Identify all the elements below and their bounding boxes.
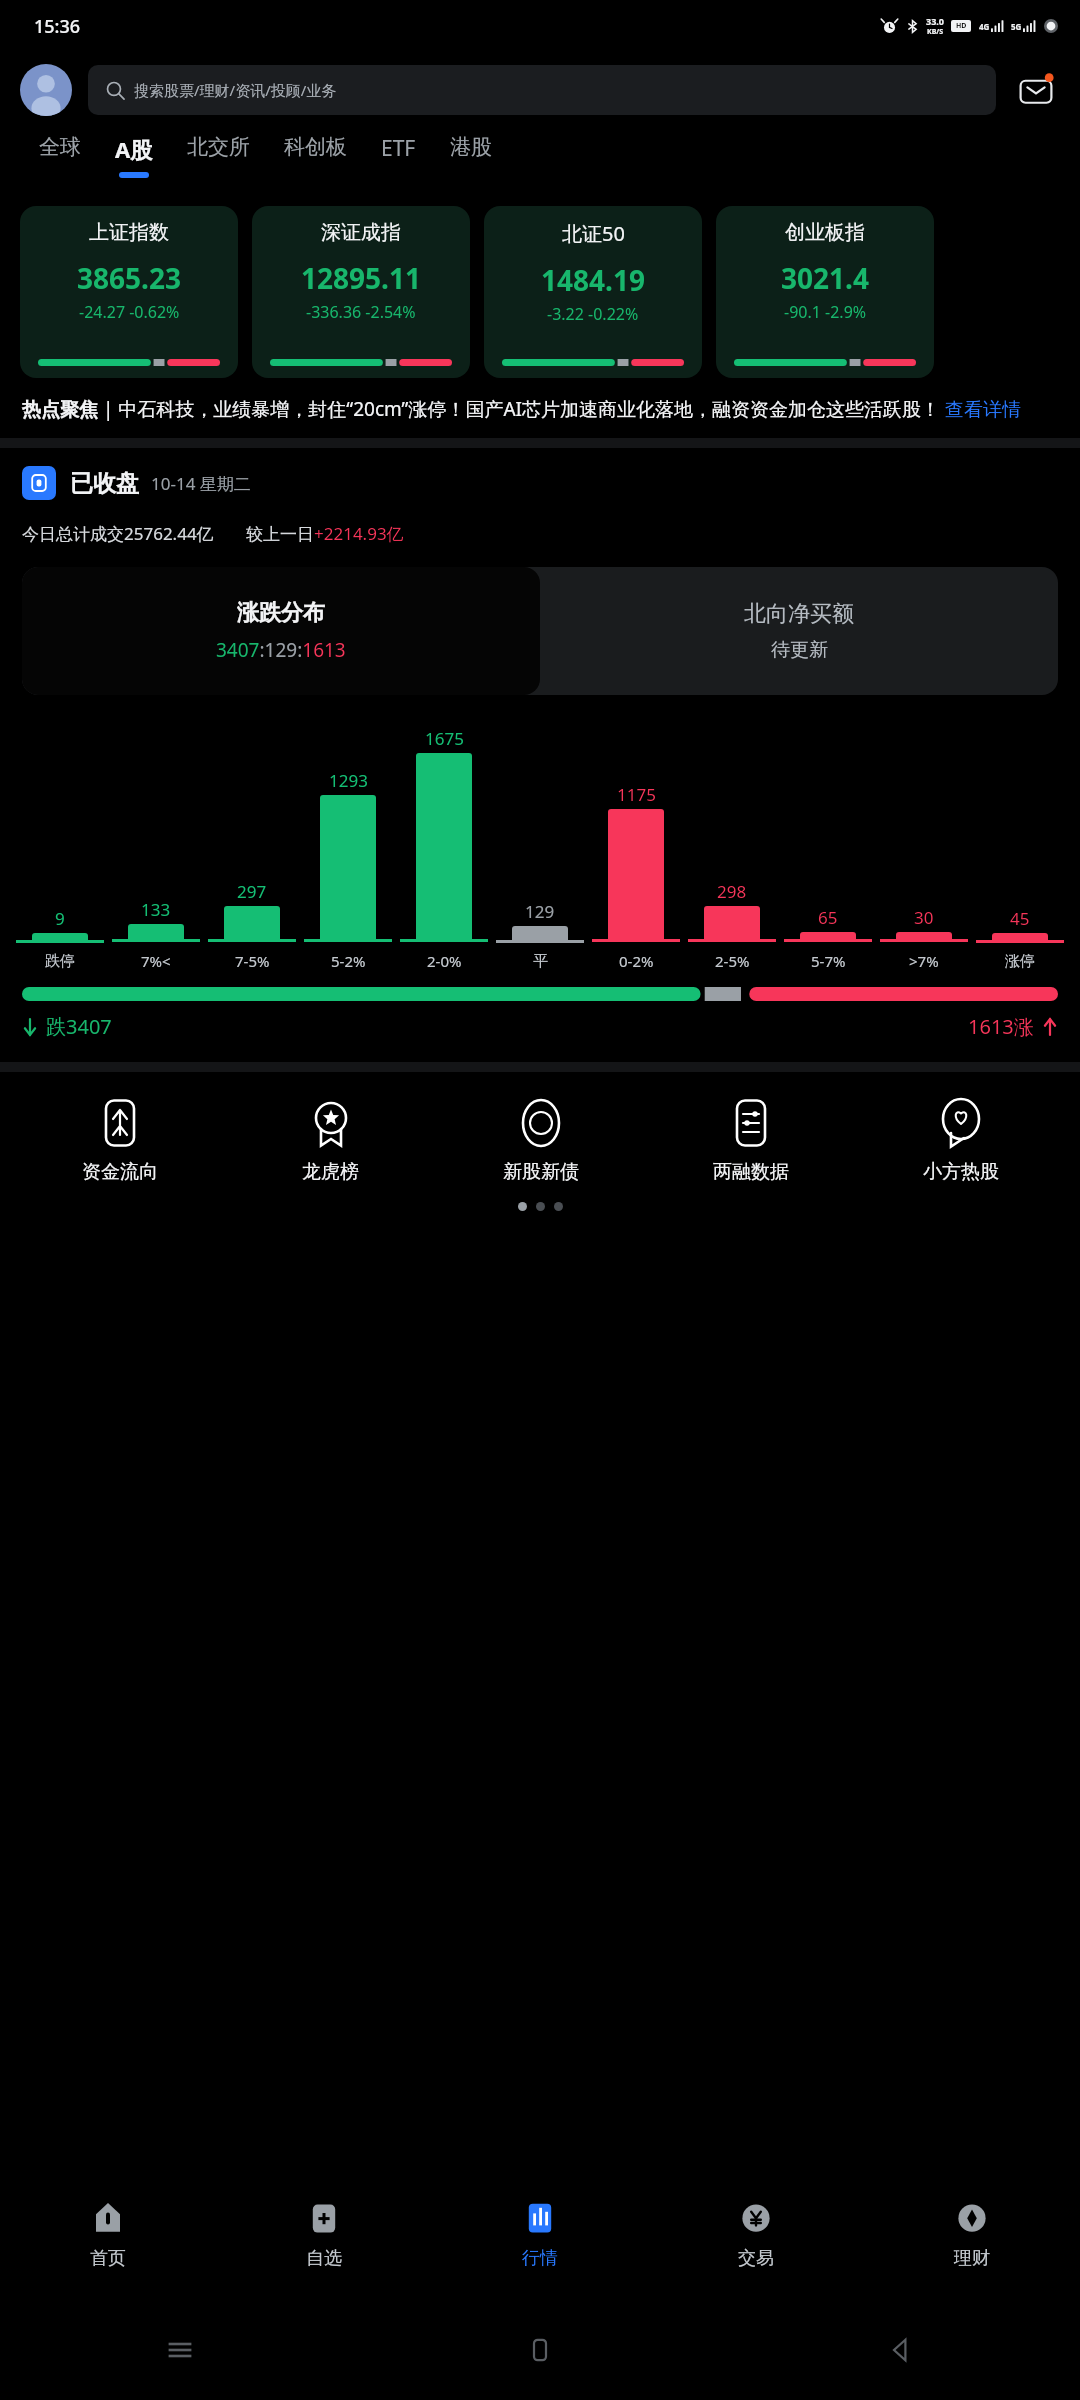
staticText: 首页 (90, 2247, 126, 2270)
staticText: 交易 (738, 2247, 774, 2270)
staticText: 1175 (617, 783, 656, 806)
staticText: 小方热股 (923, 1160, 999, 1184)
staticText: 自选 (306, 2247, 342, 2270)
staticText: HD (956, 21, 967, 31)
button[interactable]: 两融数据 (646, 1098, 856, 1184)
button[interactable]: ETF (364, 128, 433, 171)
staticText: 龙虎榜 (302, 1160, 359, 1184)
staticText: 涨跌分布 (237, 599, 325, 627)
button[interactable]: 新股新债 (436, 1098, 646, 1184)
button[interactable]: A股 (98, 128, 170, 178)
staticText: 10-14 星期二 (151, 472, 251, 495)
staticText: 深证成指 (321, 220, 401, 245)
button[interactable]: 深证成指 (252, 206, 470, 378)
button[interactable]: 创业板指 (716, 206, 934, 378)
staticText: 5-2% (331, 951, 366, 971)
staticText: >7% (909, 951, 939, 971)
staticText: 129 (525, 900, 555, 923)
button[interactable]: 龙虎榜 (225, 1098, 436, 1184)
staticText: 港股 (450, 134, 492, 160)
button[interactable]: 北交所 (170, 128, 267, 168)
button[interactable]: 理财 (864, 2168, 1080, 2300)
staticText: 新股新债 (503, 1160, 579, 1184)
staticText: 理财 (954, 2247, 990, 2270)
staticText: -90.1 -2.9% (784, 301, 867, 323)
other: Home (525, 2335, 555, 2365)
staticText: ETF (381, 134, 416, 163)
staticText: 北交所 (187, 134, 250, 160)
staticText: 平 (533, 952, 548, 971)
button[interactable]: 行情 (432, 2168, 648, 2300)
staticText: 30 (914, 906, 934, 929)
button[interactable]: 热点聚焦 | 中石科技，业绩暴增，封住“20cm”涨停！国产AI芯片加速商业化落… (22, 388, 1058, 432)
button[interactable]: Messages (1012, 66, 1060, 114)
button[interactable]: 搜索股票/理财/资讯/投顾/业务 (88, 65, 996, 115)
staticText: 两融数据 (713, 1160, 789, 1184)
staticText: -3.22 -0.22% (547, 303, 639, 325)
staticText: 15:36 (34, 14, 81, 39)
staticText: 1293 (329, 769, 368, 792)
staticText: -24.27 -0.62% (79, 301, 180, 323)
button[interactable]: 涨跌分布 (22, 567, 540, 695)
staticText: 5-7% (811, 951, 846, 971)
staticText: 3407:129:1613 (216, 637, 346, 663)
staticText: 33.0 (926, 15, 944, 27)
button[interactable]: 北证50 (484, 206, 702, 378)
staticText: 北证50 (562, 220, 625, 247)
button[interactable]: 全球 (22, 128, 98, 168)
staticText: 1484.19 (541, 261, 645, 299)
button[interactable]: 小方热股 (856, 1098, 1066, 1184)
staticText: -336.36 -2.54% (306, 301, 416, 323)
staticText: 2-0% (427, 951, 462, 971)
staticText: 2-5% (715, 951, 750, 971)
button[interactable]: 科创板 (267, 128, 364, 168)
staticText: 搜索股票/理财/资讯/投顾/业务 (134, 80, 337, 100)
button[interactable]: 交易 (648, 2168, 864, 2300)
staticText: 65 (818, 906, 838, 929)
staticText: 3021.4 (781, 259, 869, 297)
staticText: 0-2% (619, 951, 654, 971)
staticText: 今日总计成交25762.44亿 (22, 522, 214, 545)
staticText: 45 (1010, 907, 1030, 930)
staticText: 跌停 (45, 952, 75, 971)
other: Back (885, 2335, 915, 2365)
staticText: 较上一日+2214.93亿 (246, 522, 404, 545)
staticText: 待更新 (771, 638, 828, 662)
staticText: A股 (115, 134, 153, 164)
staticText: 行情 (522, 2247, 558, 2270)
button[interactable]: 资金流向 (14, 1098, 225, 1184)
staticText: 133 (141, 898, 171, 921)
button[interactable]: Profile (20, 64, 72, 116)
staticText: 5G (1011, 21, 1022, 32)
staticText: 12895.11 (301, 259, 421, 297)
staticText: 3865.23 (77, 259, 181, 297)
staticText: 热点聚焦 | 中石科技，业绩暴增，封住“20cm”涨停！国产AI芯片加速商业化落… (22, 396, 1021, 422)
button[interactable]: 上证指数 (20, 206, 238, 378)
staticText: 7%< (141, 951, 171, 971)
staticText: 298 (717, 880, 747, 903)
staticText: 1613涨 (968, 1013, 1034, 1040)
button[interactable]: 北向净买额 (540, 567, 1058, 695)
staticText: 已收盘 (70, 469, 139, 498)
button[interactable]: 首页 (0, 2168, 216, 2300)
staticText: 7-5% (235, 951, 270, 971)
button[interactable]: 自选 (216, 2168, 432, 2300)
staticText: 297 (237, 880, 267, 903)
staticText: 1675 (425, 727, 464, 750)
staticText: 9 (55, 907, 65, 930)
staticText: 跌3407 (46, 1013, 112, 1040)
staticText: 涨停 (1005, 952, 1035, 971)
staticText: 上证指数 (89, 220, 169, 245)
other: Recents (165, 2335, 195, 2365)
staticText: 科创板 (284, 134, 347, 160)
staticText: 全球 (39, 134, 81, 160)
staticText: 4G (979, 21, 990, 32)
staticText: 资金流向 (82, 1160, 158, 1184)
button[interactable]: 港股 (433, 128, 509, 168)
staticText: KB/S (927, 27, 944, 37)
staticText: 创业板指 (785, 220, 865, 245)
staticText: 北向净买额 (744, 600, 854, 628)
